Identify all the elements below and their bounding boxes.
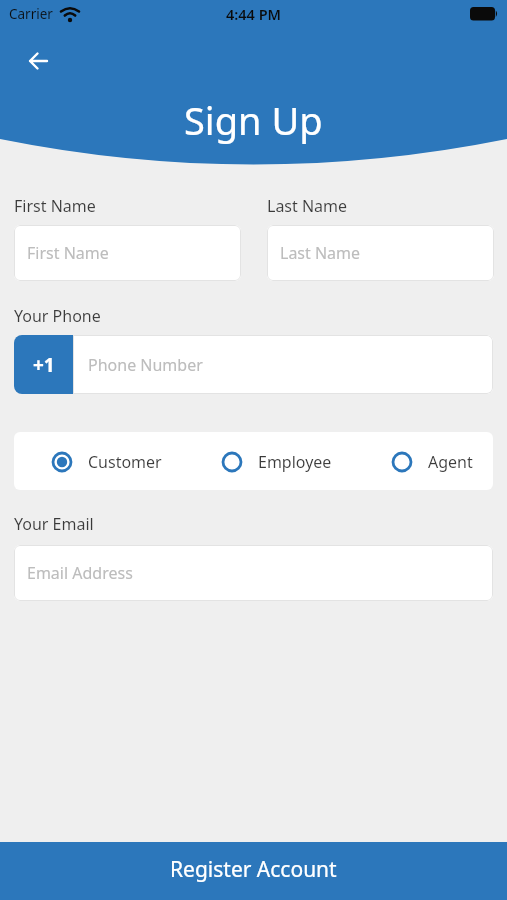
staticText: Email Address <box>27 562 133 584</box>
staticText: Your Phone <box>14 305 101 327</box>
button[interactable]: Register Account <box>0 842 507 900</box>
staticText: Phone Number <box>88 354 203 376</box>
staticText: Your Email <box>14 513 94 535</box>
staticText: First Name <box>14 195 96 217</box>
staticText: Sign Up <box>184 94 323 146</box>
button[interactable]: Last Name <box>267 225 494 281</box>
staticText: Last Name <box>267 195 348 217</box>
staticText: 4:44 PM <box>226 4 282 24</box>
staticText: Customer <box>88 451 162 473</box>
button[interactable]: Phone Number <box>73 335 493 394</box>
button[interactable]: First Name <box>14 225 241 281</box>
button[interactable]: +1 <box>14 335 73 394</box>
staticText: Agent <box>428 451 473 473</box>
button[interactable]: Employee <box>222 451 332 473</box>
staticText: First Name <box>27 242 109 264</box>
staticText: Register Account <box>170 855 337 884</box>
button[interactable]: Customer <box>52 451 162 473</box>
staticText: Employee <box>258 451 332 473</box>
staticText: +1 <box>33 352 55 378</box>
staticText: Carrier <box>9 5 53 23</box>
staticText: Last Name <box>280 242 361 264</box>
button[interactable]: Agent <box>392 451 473 473</box>
button[interactable]: Email Address <box>14 545 493 601</box>
button[interactable] <box>27 50 49 72</box>
